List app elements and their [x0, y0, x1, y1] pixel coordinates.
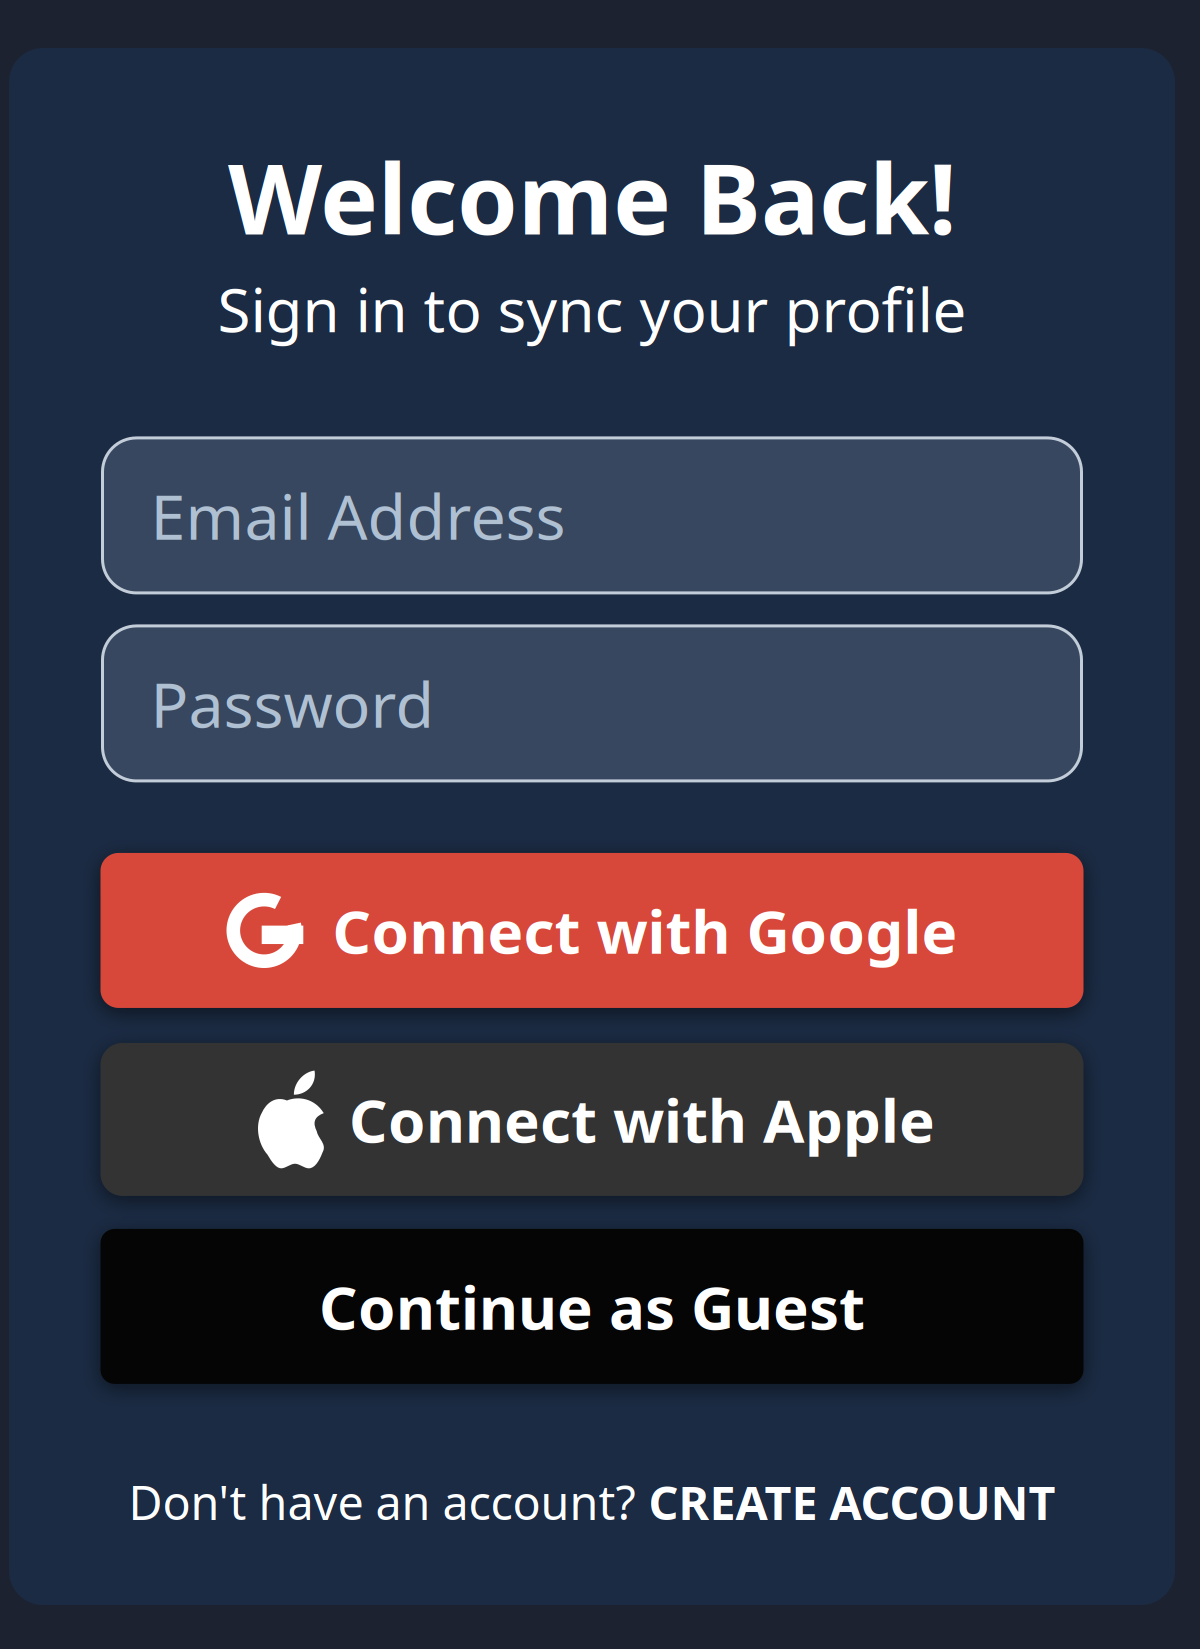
staticText: Connect with Google	[332, 891, 957, 970]
button[interactable]: Email Address	[102, 438, 1081, 593]
staticText: Welcome Back!	[228, 132, 956, 261]
button[interactable]: Connect with Google	[100, 853, 1083, 1008]
staticText: Password	[150, 662, 434, 745]
staticText: Sign in to sync your profile	[217, 269, 966, 349]
staticText: Don't have an account?	[128, 1471, 635, 1533]
button[interactable]: Continue as Guest	[100, 1229, 1083, 1384]
button[interactable]: Connect with Apple	[100, 1043, 1083, 1196]
staticText: Connect with Apple	[349, 1080, 935, 1159]
staticText: Email Address	[150, 474, 565, 557]
staticText: CREATE ACCOUNT	[648, 1471, 1055, 1533]
button[interactable]: Don't have an account?	[128, 1471, 1055, 1533]
button[interactable]: Password	[102, 626, 1081, 781]
staticText: Continue as Guest	[319, 1267, 865, 1346]
